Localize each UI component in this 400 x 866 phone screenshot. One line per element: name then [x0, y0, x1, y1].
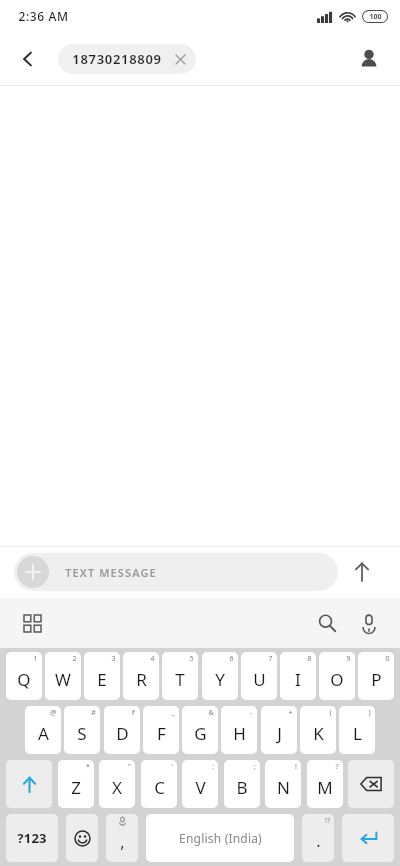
staticText: (	[329, 708, 332, 718]
staticText: 6	[229, 654, 234, 664]
staticText: W	[55, 668, 71, 691]
staticText: 18730218809	[72, 50, 162, 68]
button[interactable]: ?	[307, 760, 343, 808]
staticText: :	[212, 762, 214, 772]
button[interactable]: Backspace	[348, 760, 394, 808]
staticText: 1	[33, 654, 38, 664]
button[interactable]: !	[265, 760, 301, 808]
staticText: V	[195, 776, 206, 799]
staticText: TEXT MESSAGE	[65, 565, 157, 580]
staticText: L	[353, 722, 362, 745]
button[interactable]: 5	[162, 652, 198, 700]
staticText: N	[277, 776, 290, 799]
staticText: 7	[268, 654, 273, 664]
staticText: ;	[254, 762, 256, 772]
button[interactable]: Contacts	[348, 38, 390, 80]
button[interactable]: Shift	[6, 760, 52, 808]
staticText: &	[208, 708, 214, 718]
button[interactable]: ?123	[6, 814, 58, 862]
button[interactable]: Enter	[342, 814, 394, 862]
button[interactable]: 18730218809	[58, 44, 196, 74]
staticText: 4	[150, 654, 155, 664]
other: Enter	[342, 814, 394, 862]
button[interactable]: English (India)	[146, 814, 294, 862]
button[interactable]: Emoji	[66, 814, 98, 862]
button[interactable]: 9	[319, 652, 355, 700]
button[interactable]: Back	[8, 39, 48, 79]
button[interactable]: Add attachment	[14, 553, 338, 591]
staticText: X	[112, 776, 122, 799]
button[interactable]: Voice input	[348, 602, 390, 644]
staticText: U	[253, 668, 266, 691]
staticText: Y	[215, 668, 225, 691]
staticText: 2:36 AM	[18, 8, 69, 24]
button[interactable]: ;	[224, 760, 260, 808]
button[interactable]: 2	[45, 652, 81, 700]
staticText: _	[171, 708, 175, 718]
staticText: )	[368, 708, 371, 718]
button[interactable]: 3	[84, 652, 120, 700]
staticText: G	[194, 722, 207, 745]
staticText: S	[77, 722, 87, 745]
staticText: ?123	[17, 829, 47, 847]
staticText: E	[97, 668, 107, 691]
button[interactable]: Add attachment	[17, 556, 49, 588]
staticText: A	[38, 722, 49, 745]
staticText: F	[157, 722, 166, 745]
staticText: I	[295, 668, 301, 691]
button[interactable]: Keyboard options	[12, 603, 52, 643]
button[interactable]: !?	[302, 814, 334, 862]
button[interactable]: (	[300, 706, 336, 754]
button[interactable]: '	[141, 760, 177, 808]
staticText: #	[91, 708, 96, 718]
button[interactable]: Remove recipient	[172, 51, 188, 67]
button[interactable]: @	[25, 706, 61, 754]
button[interactable]: :	[182, 760, 218, 808]
staticText: 0	[385, 654, 390, 664]
staticText: "	[128, 762, 131, 772]
staticText: T	[175, 668, 185, 691]
staticText: @	[50, 708, 57, 718]
button[interactable]: 8	[280, 652, 316, 700]
staticText: P	[371, 668, 382, 691]
staticText: Q	[17, 668, 31, 691]
button[interactable]: 1	[6, 652, 42, 700]
button[interactable]: ₹	[104, 706, 140, 754]
staticText: *	[86, 762, 90, 772]
staticText: R	[136, 668, 147, 691]
staticText: +	[288, 708, 293, 718]
button[interactable]: "	[99, 760, 135, 808]
other: Emoji	[66, 814, 98, 862]
button[interactable]: 6	[202, 652, 238, 700]
staticText: K	[313, 722, 324, 745]
button[interactable]: -	[221, 706, 257, 754]
staticText: English (India)	[179, 830, 262, 846]
button[interactable]: *	[58, 760, 94, 808]
button[interactable]: 4	[123, 652, 159, 700]
button[interactable]: &	[182, 706, 218, 754]
button[interactable]: _	[143, 706, 179, 754]
button[interactable]: #	[64, 706, 100, 754]
staticText: D	[116, 722, 129, 745]
button[interactable]: Send	[338, 548, 386, 596]
staticText: '	[171, 762, 173, 772]
button[interactable]: 7	[241, 652, 277, 700]
staticText: 9	[346, 654, 351, 664]
button[interactable]: 0	[358, 652, 394, 700]
staticText: C	[154, 776, 165, 799]
staticText: O	[330, 668, 344, 691]
button[interactable]: Search	[306, 602, 348, 644]
button[interactable]: ,	[106, 814, 138, 862]
staticText: 5	[189, 654, 194, 664]
button[interactable]: )	[339, 706, 375, 754]
staticText: !?	[325, 816, 330, 826]
staticText: ₹	[131, 708, 136, 718]
staticText: 100	[369, 12, 382, 22]
button[interactable]: +	[261, 706, 297, 754]
staticText: ?	[335, 762, 339, 772]
staticText: -	[250, 708, 253, 718]
staticText: 3	[111, 654, 116, 664]
staticText: ,	[120, 831, 125, 853]
staticText: .	[316, 830, 321, 852]
staticText: 2	[72, 654, 77, 664]
